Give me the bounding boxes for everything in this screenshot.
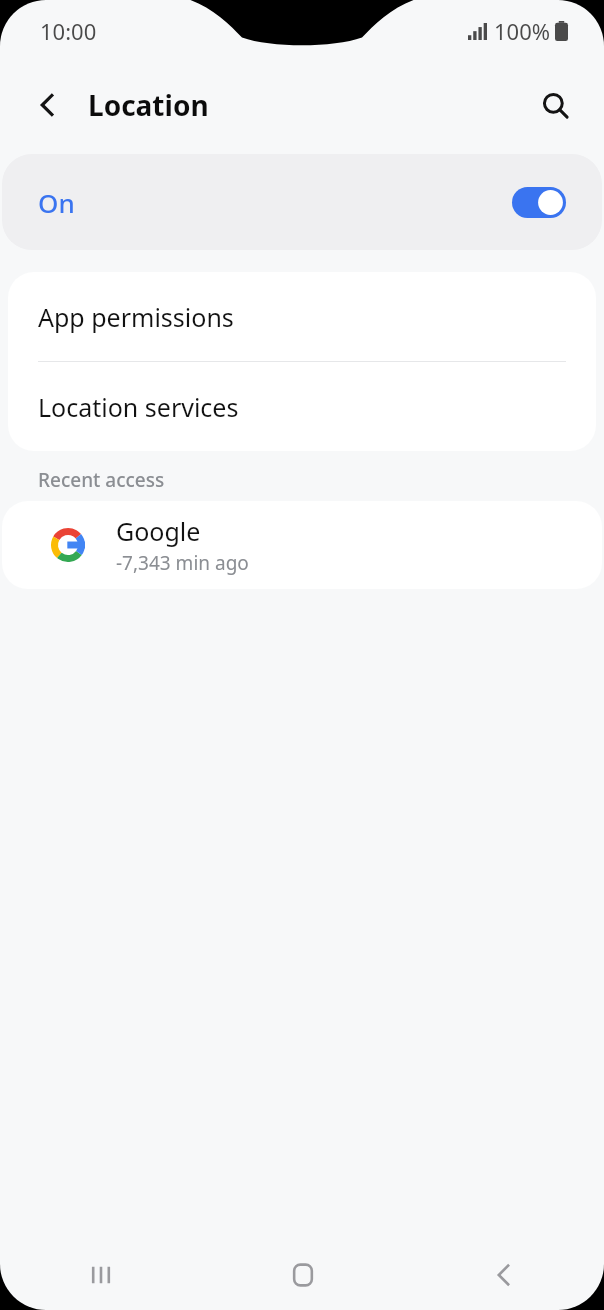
staticText: Recent access bbox=[38, 467, 165, 493]
button[interactable]: Google bbox=[2, 501, 602, 589]
staticText: -7,343 min ago bbox=[116, 550, 249, 576]
staticText: On bbox=[38, 185, 75, 220]
button[interactable]: App permissions bbox=[8, 272, 596, 361]
staticText: App permissions bbox=[38, 300, 234, 334]
staticText: Location bbox=[88, 86, 209, 124]
staticText: 10:00 bbox=[40, 16, 97, 46]
button[interactable]: On bbox=[2, 154, 602, 250]
staticText: Google bbox=[116, 514, 201, 548]
staticText: 100% bbox=[494, 16, 551, 46]
staticText: Location services bbox=[38, 390, 239, 424]
button[interactable]: Location services bbox=[8, 362, 596, 451]
button[interactable]: Search bbox=[528, 78, 582, 132]
button[interactable]: Back bbox=[22, 79, 74, 131]
button[interactable]: Back bbox=[403, 1240, 604, 1310]
button[interactable]: Home bbox=[202, 1240, 403, 1310]
button[interactable]: Recent apps bbox=[0, 1240, 202, 1310]
